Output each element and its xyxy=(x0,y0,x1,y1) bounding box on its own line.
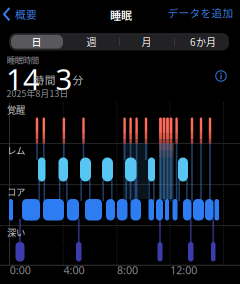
staticText: 時間 xyxy=(34,72,56,87)
staticText: 概要 xyxy=(15,6,37,22)
staticText: 2025年8月13日 xyxy=(6,87,68,99)
staticText: 3 xyxy=(55,59,72,98)
button[interactable]: 概要 xyxy=(0,0,37,28)
staticText: 睡眠時間 xyxy=(7,53,39,66)
staticText: データを追加 xyxy=(167,5,233,20)
staticText: 12:00 xyxy=(170,263,197,277)
staticText: 8:00 xyxy=(117,263,138,277)
button[interactable]: 月 xyxy=(119,33,174,50)
staticText: 6か月 xyxy=(190,34,216,49)
staticText: 14 xyxy=(6,59,40,98)
staticText: 分 xyxy=(72,72,83,87)
button[interactable]: 日 xyxy=(9,33,64,50)
staticText: レム xyxy=(7,143,25,157)
staticText: 深い xyxy=(7,225,25,239)
staticText: 週 xyxy=(86,34,96,49)
button[interactable] xyxy=(214,69,228,83)
staticText: 4:00 xyxy=(63,263,84,277)
staticText: 覚醒 xyxy=(7,103,25,116)
staticText: 睡眠 xyxy=(110,7,132,23)
button[interactable]: 週 xyxy=(64,33,119,50)
button[interactable]: データを追加 xyxy=(167,5,233,20)
staticText: コア xyxy=(7,185,25,198)
staticText: 日 xyxy=(31,34,41,49)
staticText: 月 xyxy=(141,34,151,49)
button[interactable]: 6か月 xyxy=(175,33,230,50)
staticText: 0:00 xyxy=(10,263,31,277)
